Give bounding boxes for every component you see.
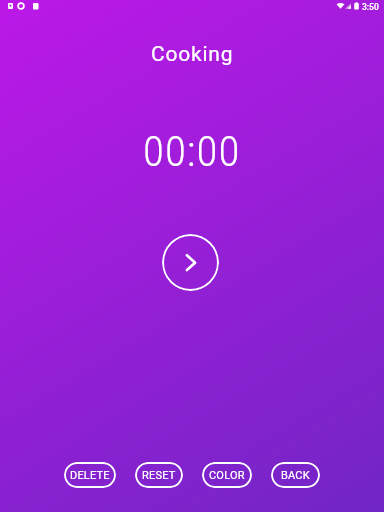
staticText: DELETE [70, 469, 110, 482]
button[interactable] [162, 234, 219, 291]
button[interactable]: DELETE [64, 462, 116, 488]
button[interactable]: COLOR [202, 462, 252, 488]
staticText: 3:50 [362, 2, 379, 12]
staticText: 00:00 [143, 126, 241, 176]
staticText: BACK [281, 469, 310, 482]
button[interactable]: BACK [271, 462, 320, 488]
staticText: COLOR [209, 469, 245, 482]
button[interactable]: RESET [135, 462, 183, 488]
staticText: Cooking [151, 42, 234, 67]
staticText: RESET [142, 469, 176, 482]
